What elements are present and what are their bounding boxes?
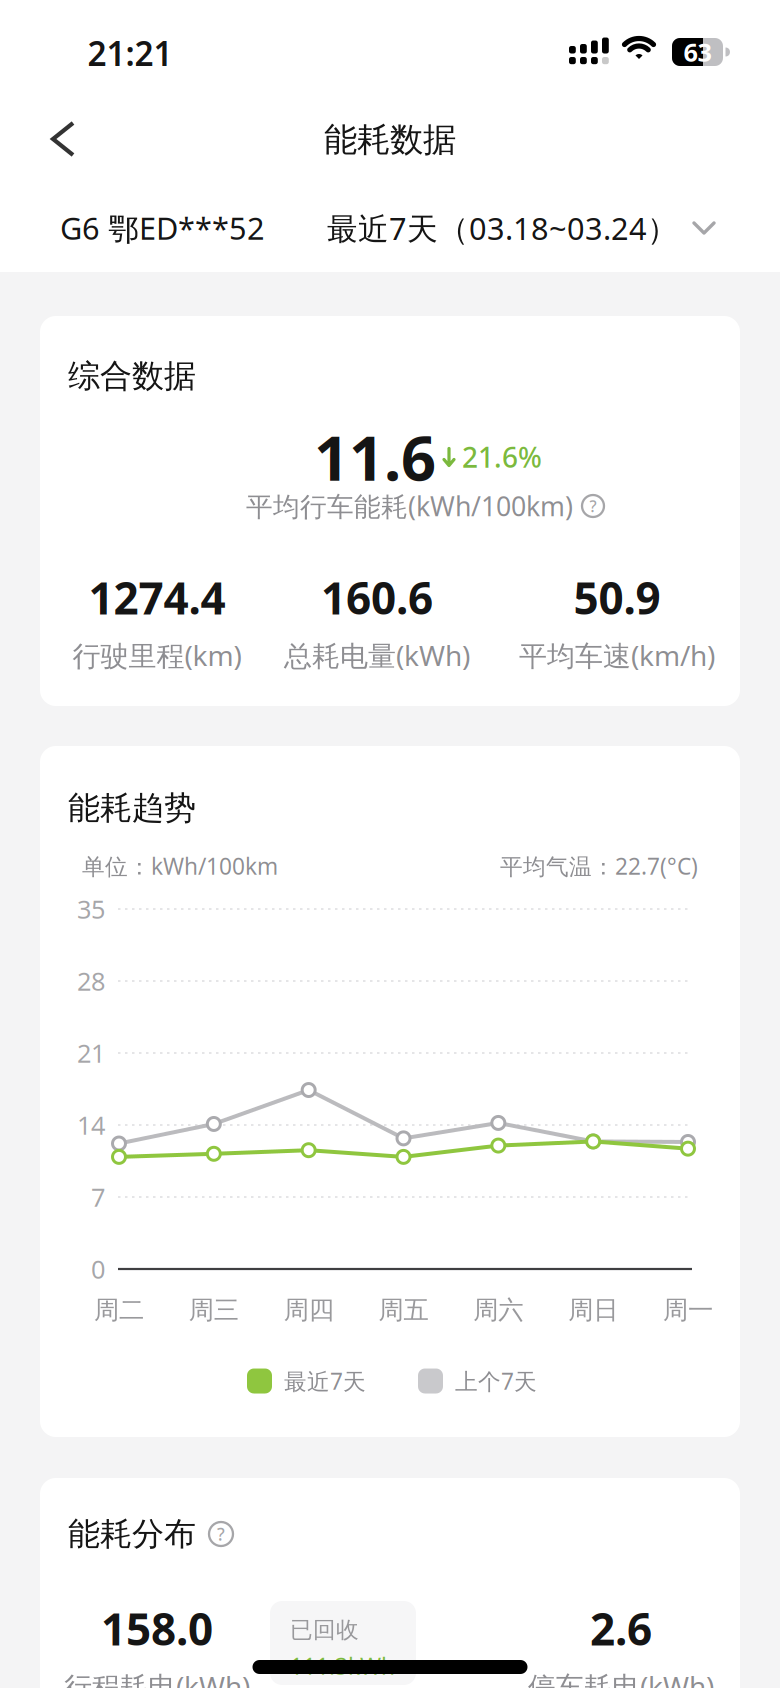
staticText: 行驶里程(km) bbox=[72, 637, 241, 674]
staticText: 1274.4 bbox=[88, 568, 225, 627]
button[interactable]: G6 鄂ED***52 bbox=[60, 208, 360, 248]
staticText: 能耗数据 bbox=[324, 119, 456, 160]
staticText: 21 bbox=[77, 1036, 105, 1070]
staticText: 周六 bbox=[473, 1294, 523, 1325]
staticText: 周三 bbox=[189, 1294, 239, 1325]
staticText: 0 bbox=[91, 1252, 105, 1286]
staticText: 行程耗电(kWh) bbox=[64, 1668, 250, 1688]
staticText: 35 bbox=[77, 892, 105, 926]
button[interactable]: 最近7天（03.18~03.24） bbox=[266, 208, 716, 248]
staticText: 能耗分布 bbox=[68, 1514, 196, 1554]
staticText: 周五 bbox=[378, 1294, 428, 1325]
staticText: 最近7天（03.18~03.24） bbox=[327, 208, 678, 248]
staticText: 周二 bbox=[94, 1294, 144, 1325]
staticText: 160.6 bbox=[321, 568, 433, 627]
staticText: 111.3kWh bbox=[290, 1651, 395, 1681]
staticText: 平均行车能耗(kWh/100km) bbox=[246, 488, 573, 524]
staticText: 周日 bbox=[568, 1294, 618, 1325]
staticText: 11.6 bbox=[314, 416, 436, 498]
button[interactable]: Help bbox=[582, 495, 604, 517]
staticText: 能耗趋势 bbox=[68, 788, 196, 828]
staticText: 周四 bbox=[284, 1294, 334, 1325]
staticText: 28 bbox=[77, 964, 105, 998]
staticText: 周一 bbox=[663, 1294, 713, 1325]
staticText: 50.9 bbox=[573, 568, 660, 627]
staticText: 最近7天 bbox=[284, 1366, 366, 1396]
staticText: 已回收 bbox=[290, 1616, 359, 1644]
staticText: 63 bbox=[683, 35, 711, 69]
staticText: ? bbox=[589, 495, 596, 517]
staticText: 21.6% bbox=[462, 438, 542, 476]
staticText: 总耗电量(kWh) bbox=[284, 637, 470, 674]
staticText: 21:21 bbox=[87, 31, 172, 75]
staticText: 上个7天 bbox=[455, 1366, 537, 1396]
button[interactable]: Help bbox=[209, 1522, 233, 1546]
staticText: G6 鄂ED***52 bbox=[60, 208, 265, 248]
staticText: 单位：kWh/100km bbox=[82, 851, 278, 881]
staticText: 2.6 bbox=[590, 1599, 652, 1658]
staticText: 停车耗电(kWh) bbox=[528, 1668, 714, 1688]
staticText: 平均气温：22.7(°C) bbox=[500, 851, 698, 881]
staticText: 158.0 bbox=[101, 1599, 213, 1658]
staticText: 14 bbox=[77, 1108, 105, 1142]
button[interactable]: Back bbox=[49, 120, 79, 158]
staticText: 平均车速(km/h) bbox=[519, 637, 715, 674]
staticText: 综合数据 bbox=[68, 356, 196, 396]
staticText: 7 bbox=[91, 1180, 105, 1214]
staticText: ? bbox=[217, 1522, 225, 1545]
